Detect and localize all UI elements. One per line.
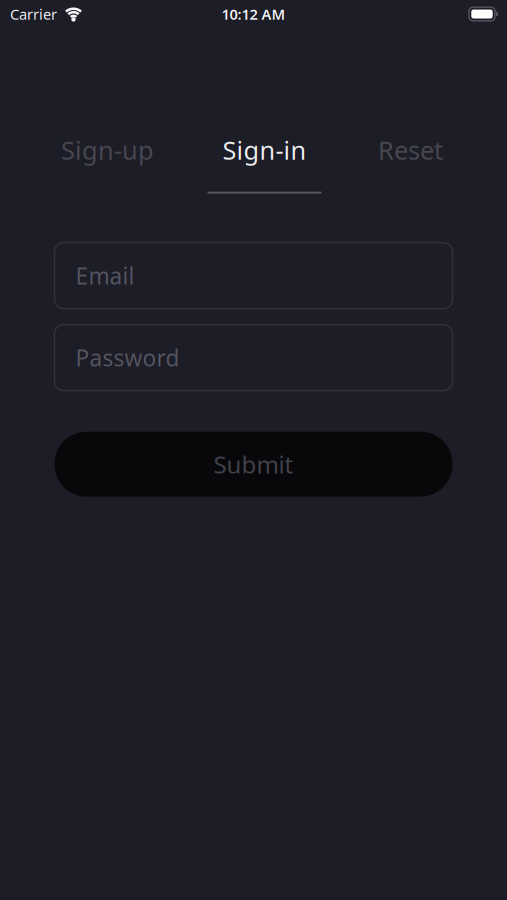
staticText: Submit: [213, 448, 293, 480]
button[interactable]: Email: [54, 243, 452, 309]
staticText: Reset: [378, 133, 443, 167]
staticText: Sign-in: [222, 133, 306, 167]
staticText: Email: [75, 261, 134, 291]
button[interactable]: Password: [54, 325, 452, 391]
staticText: Carrier: [10, 4, 57, 24]
staticText: Password: [75, 343, 179, 373]
staticText: 10:12 AM: [221, 4, 285, 24]
button[interactable]: Reset: [361, 133, 459, 194]
button[interactable]: Sign-in: [207, 133, 321, 194]
staticText: Sign-up: [61, 133, 154, 167]
button[interactable]: Sign-up: [47, 133, 167, 194]
button[interactable]: Submit: [54, 432, 452, 497]
